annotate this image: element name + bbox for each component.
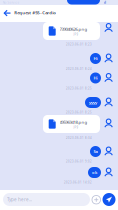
button[interactable]: Back (3, 9, 11, 18)
staticText: 2023-06-01 14:02 (64, 181, 92, 184)
staticText: 495969418.png (59, 119, 87, 125)
staticText: 2023-06-01 9:02 (66, 160, 92, 163)
staticText: Sa (93, 149, 97, 154)
staticText: Hi (93, 56, 97, 61)
button[interactable]: 739040626.png (43, 22, 100, 40)
button[interactable]: Hi (90, 72, 101, 83)
staticText: yyyy (89, 100, 97, 105)
staticText: 2023-06-01 8:25 (66, 87, 92, 90)
button[interactable]: Type here... (3, 193, 90, 206)
button[interactable]: Attach (92, 195, 100, 204)
button[interactable]: ok (88, 167, 101, 178)
staticText: ok (92, 170, 97, 175)
staticText: No Service (2, 0, 19, 5)
staticText: 2023-06-01 8:34 (66, 136, 92, 140)
staticText: 739040626.png (59, 26, 87, 32)
staticText: jpg (73, 32, 78, 35)
staticText: Request #55 - Cardio (14, 10, 56, 15)
staticText: jpg (73, 125, 78, 128)
staticText: 2023-06-01 8:25 (66, 111, 92, 114)
button[interactable]: Send (102, 193, 115, 206)
staticText: 2023-06-01 8:24 (66, 67, 92, 71)
button[interactable]: Sa (90, 146, 101, 157)
button[interactable]: Hi (90, 53, 101, 64)
button[interactable]: yyyy (85, 97, 101, 108)
staticText: Type here... (7, 196, 32, 203)
staticText: ıl (104, 0, 106, 5)
staticText: 2023-06-01 8:23 (66, 43, 92, 46)
button[interactable]: 495969418.png (43, 115, 100, 133)
staticText: Hi (93, 75, 97, 81)
